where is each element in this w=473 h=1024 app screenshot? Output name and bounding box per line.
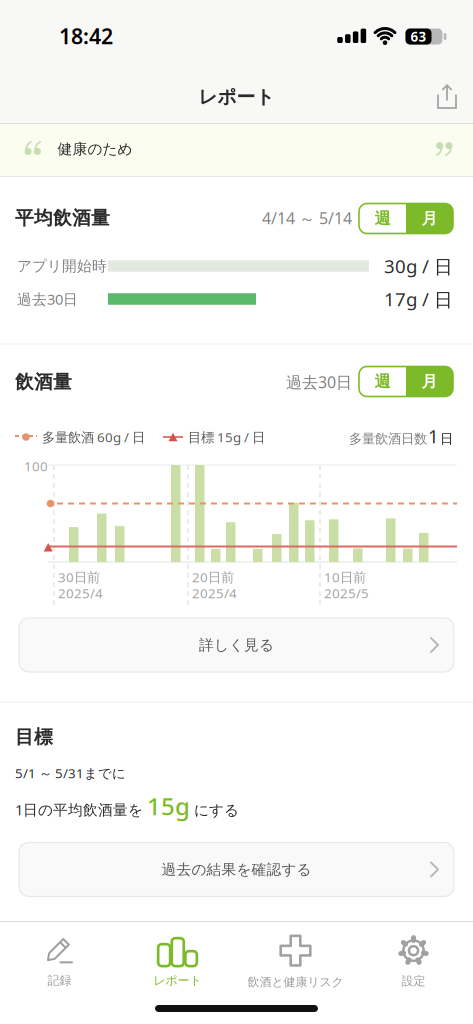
staticText: 15g	[147, 790, 190, 822]
staticText: 2025/4	[58, 584, 103, 602]
button[interactable]	[433, 82, 461, 112]
staticText: 2025/5	[324, 584, 369, 602]
staticText: 17g / 日	[384, 287, 453, 311]
button[interactable]: 詳しく見る	[19, 618, 454, 672]
staticText: 記録	[47, 973, 71, 988]
staticText: にする	[194, 801, 239, 819]
staticText: アプリ開始時	[17, 257, 107, 275]
staticText: 過去の結果を確認する	[161, 860, 311, 878]
staticText: 週	[374, 372, 390, 391]
staticText: 100	[24, 457, 48, 475]
staticText: 4/14 ～ 5/14	[262, 207, 352, 229]
staticText: 週	[374, 209, 390, 228]
staticText: 30日前	[58, 568, 100, 586]
staticText: 2025/4	[192, 584, 237, 602]
staticText: 63	[410, 28, 426, 45]
staticText: 10日前	[324, 568, 366, 586]
button[interactable]: 週	[358, 365, 454, 398]
button[interactable]: 設定	[354, 928, 472, 994]
staticText: 月	[421, 372, 437, 391]
staticText: 目標 15g / 日	[188, 428, 265, 446]
staticText: 過去30日	[286, 371, 352, 393]
staticText: レポート	[198, 85, 274, 108]
staticText: 詳しく見る	[199, 636, 274, 654]
staticText: 多量飲酒 60g / 日	[42, 428, 145, 446]
staticText: 多量飲酒日数	[349, 431, 427, 447]
button[interactable]: 週	[359, 203, 406, 233]
button[interactable]: 週	[358, 202, 454, 235]
staticText: 目標	[15, 725, 53, 748]
button[interactable]: レポート	[118, 928, 236, 994]
staticText: 月	[421, 209, 437, 228]
staticText: 30g / 日	[384, 254, 453, 278]
button[interactable]: 記録	[0, 928, 118, 994]
staticText: 健康のため	[57, 140, 132, 158]
staticText: 1日の平均飲酒量を	[15, 800, 143, 819]
staticText: 20日前	[192, 568, 234, 586]
staticText: レポート	[153, 973, 201, 988]
staticText: 1	[428, 424, 439, 448]
button[interactable]: 過去の結果を確認する	[19, 842, 454, 896]
staticText: 飲酒量	[15, 370, 72, 393]
staticText: 日	[440, 431, 453, 447]
button[interactable]: 月	[406, 203, 453, 233]
staticText: 設定	[401, 974, 425, 988]
button[interactable]: 週	[359, 366, 406, 396]
button[interactable]: 飲酒と健康リスク	[236, 928, 354, 994]
staticText: 5/1 ～ 5/31までに	[15, 764, 126, 782]
staticText: 飲酒と健康リスク	[247, 975, 343, 989]
staticText: 平均飲酒量	[15, 206, 110, 229]
button[interactable]: 月	[406, 366, 453, 396]
staticText: 過去30日	[17, 289, 78, 309]
staticText: 18:42	[59, 22, 113, 50]
